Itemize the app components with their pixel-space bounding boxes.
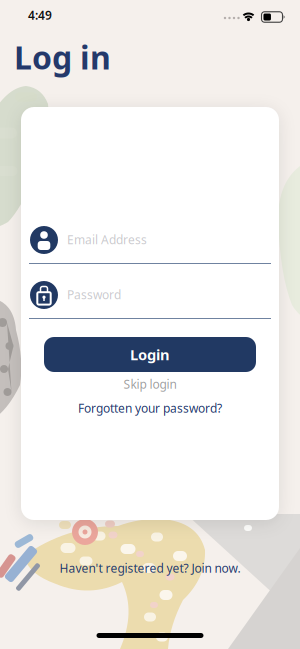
button[interactable]: Skip login — [117, 372, 182, 396]
staticText: Join now. — [191, 560, 240, 576]
staticText: Skip login — [123, 376, 176, 392]
staticText: Password — [67, 286, 121, 302]
button[interactable]: Forgotten your password? — [72, 396, 228, 420]
staticText: 4:49 — [28, 7, 52, 23]
staticText: Login — [130, 345, 170, 364]
button[interactable]: Haven't registered yet? — [53, 556, 246, 580]
button[interactable]: Login — [44, 337, 256, 372]
staticText: Email Address — [67, 231, 147, 247]
staticText: Forgotten your password? — [78, 400, 222, 416]
staticText: Log in — [14, 36, 111, 78]
staticText: Haven't registered yet? — [59, 560, 188, 576]
